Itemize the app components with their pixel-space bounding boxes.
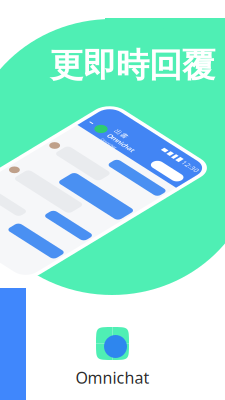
- staticText: Omnichat: [75, 367, 149, 388]
- staticText: 更即時回覆: [50, 45, 215, 86]
- staticText: Omnichat: [31, 38, 48, 43]
- staticText: 出書 Omnichat: [31, 20, 62, 37]
